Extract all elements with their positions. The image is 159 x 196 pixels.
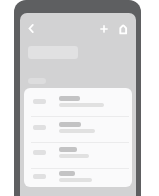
button[interactable] (24, 141, 132, 165)
button[interactable] (97, 22, 111, 36)
button[interactable] (24, 116, 132, 140)
button[interactable] (24, 90, 132, 114)
button[interactable] (24, 165, 132, 187)
button[interactable] (23, 22, 37, 36)
button[interactable] (117, 23, 129, 35)
